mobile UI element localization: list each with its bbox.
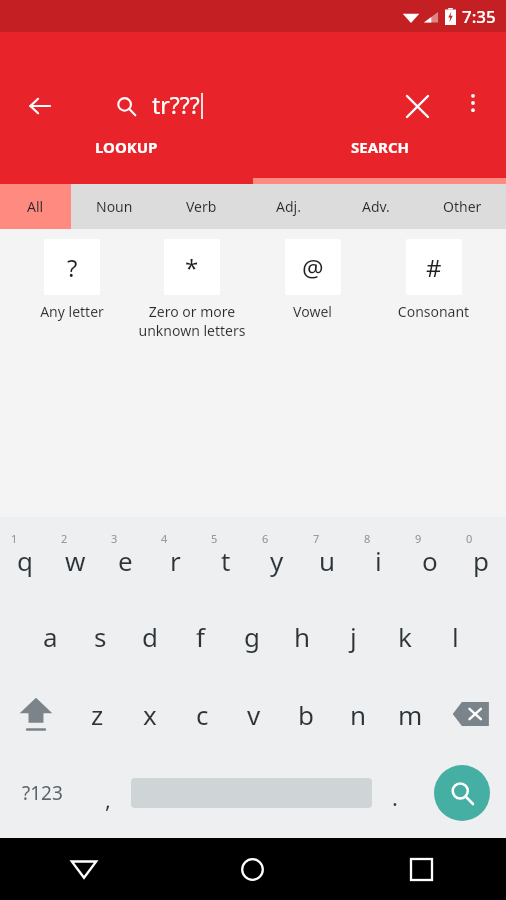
staticText: 0 bbox=[466, 531, 473, 546]
button[interactable]: 3 bbox=[100, 521, 150, 597]
button[interactable]: , bbox=[85, 753, 131, 833]
button[interactable]: 7 bbox=[302, 521, 353, 597]
button[interactable]: LOOKUP bbox=[0, 122, 253, 184]
button[interactable]: k bbox=[379, 597, 430, 675]
button[interactable]: 1 bbox=[0, 521, 50, 597]
button[interactable]: s bbox=[75, 597, 125, 675]
staticText: 8 bbox=[364, 531, 371, 546]
button[interactable]: Home bbox=[168, 838, 337, 900]
staticText: h bbox=[294, 619, 311, 654]
button[interactable]: Adj. bbox=[245, 184, 332, 229]
button[interactable]: Backspace bbox=[436, 675, 506, 753]
button[interactable]: a bbox=[25, 597, 75, 675]
button[interactable]: c bbox=[176, 675, 228, 753]
button[interactable]: . bbox=[372, 753, 418, 833]
button[interactable]: n bbox=[332, 675, 384, 753]
button[interactable]: h bbox=[277, 597, 328, 675]
button[interactable]: 8 bbox=[353, 521, 404, 597]
staticText: ? bbox=[67, 251, 78, 284]
button[interactable]: Search bbox=[418, 753, 506, 833]
button[interactable]: 6 bbox=[251, 521, 302, 597]
staticText: SEARCH bbox=[351, 137, 409, 157]
button[interactable]: Verb bbox=[158, 184, 245, 229]
staticText: r bbox=[170, 543, 181, 578]
staticText: a bbox=[43, 619, 58, 654]
button[interactable]: j bbox=[328, 597, 379, 675]
staticText: # bbox=[426, 251, 442, 284]
staticText: g bbox=[244, 619, 260, 654]
staticText: 1 bbox=[11, 531, 18, 546]
button[interactable]: tr??? bbox=[152, 84, 448, 128]
button[interactable]: Other bbox=[419, 184, 506, 229]
button[interactable]: ? bbox=[12, 239, 132, 321]
button[interactable]: Noun bbox=[71, 184, 158, 229]
button[interactable]: SEARCH bbox=[253, 122, 506, 184]
button[interactable]: Recents bbox=[337, 838, 506, 900]
button[interactable]: l bbox=[430, 597, 481, 675]
button[interactable]: 5 bbox=[200, 521, 251, 597]
button[interactable]: All bbox=[0, 184, 71, 229]
button[interactable]: f bbox=[175, 597, 226, 675]
staticText: Any letter bbox=[14, 302, 130, 321]
staticText: Adj. bbox=[276, 197, 301, 216]
staticText: . bbox=[392, 782, 398, 812]
button[interactable]: b bbox=[280, 675, 332, 753]
staticText: o bbox=[422, 543, 438, 578]
button[interactable]: 4 bbox=[150, 521, 200, 597]
staticText: , bbox=[105, 784, 111, 814]
staticText: Zero or more unknown letters bbox=[134, 302, 250, 340]
staticText: i bbox=[375, 543, 382, 578]
button[interactable]: v bbox=[228, 675, 280, 753]
button[interactable]: Back bbox=[16, 82, 64, 130]
staticText: l bbox=[452, 619, 459, 654]
staticText: s bbox=[94, 619, 107, 654]
staticText: k bbox=[398, 619, 412, 654]
button[interactable]: * bbox=[132, 239, 252, 340]
button[interactable]: Clear bbox=[393, 82, 441, 130]
button[interactable]: # bbox=[373, 239, 494, 321]
staticText: e bbox=[118, 543, 133, 578]
staticText: j bbox=[350, 619, 357, 654]
staticText: * bbox=[185, 251, 199, 284]
staticText: 7:35 bbox=[462, 5, 496, 28]
button[interactable]: d bbox=[125, 597, 175, 675]
staticText: 7 bbox=[313, 531, 320, 546]
button[interactable]: Adv. bbox=[332, 184, 419, 229]
button[interactable]: ?123 bbox=[0, 753, 85, 833]
button[interactable]: Space bbox=[131, 753, 372, 833]
button[interactable]: z bbox=[71, 675, 124, 753]
button[interactable]: m bbox=[384, 675, 436, 753]
staticText: w bbox=[65, 543, 86, 578]
staticText: n bbox=[350, 697, 367, 732]
staticText: 6 bbox=[262, 531, 269, 546]
staticText: @ bbox=[302, 251, 324, 284]
button[interactable]: More options bbox=[452, 82, 494, 124]
button[interactable]: x bbox=[124, 675, 176, 753]
staticText: Other bbox=[443, 197, 482, 216]
staticText: tr??? bbox=[152, 89, 200, 120]
staticText: y bbox=[270, 543, 284, 578]
staticText: Consonant bbox=[375, 302, 492, 321]
staticText: 3 bbox=[111, 531, 118, 546]
staticText: Adv. bbox=[362, 197, 390, 216]
button[interactable]: 0 bbox=[455, 521, 506, 597]
staticText: u bbox=[319, 543, 336, 578]
staticText: Noun bbox=[96, 197, 133, 216]
button[interactable]: 9 bbox=[404, 521, 455, 597]
button[interactable]: 2 bbox=[50, 521, 100, 597]
staticText: p bbox=[473, 543, 489, 578]
staticText: 4 bbox=[161, 531, 168, 546]
button[interactable]: Back bbox=[0, 838, 168, 900]
staticText: x bbox=[143, 697, 157, 732]
staticText: c bbox=[196, 697, 209, 732]
staticText: b bbox=[298, 697, 314, 732]
staticText: m bbox=[398, 697, 423, 732]
staticText: 9 bbox=[415, 531, 422, 546]
button[interactable]: Shift bbox=[0, 675, 71, 753]
button[interactable]: g bbox=[226, 597, 277, 675]
staticText: 2 bbox=[61, 531, 68, 546]
button[interactable]: @ bbox=[252, 239, 373, 321]
staticText: Vowel bbox=[254, 302, 371, 321]
staticText: LOOKUP bbox=[95, 137, 158, 157]
staticText: t bbox=[221, 543, 231, 578]
